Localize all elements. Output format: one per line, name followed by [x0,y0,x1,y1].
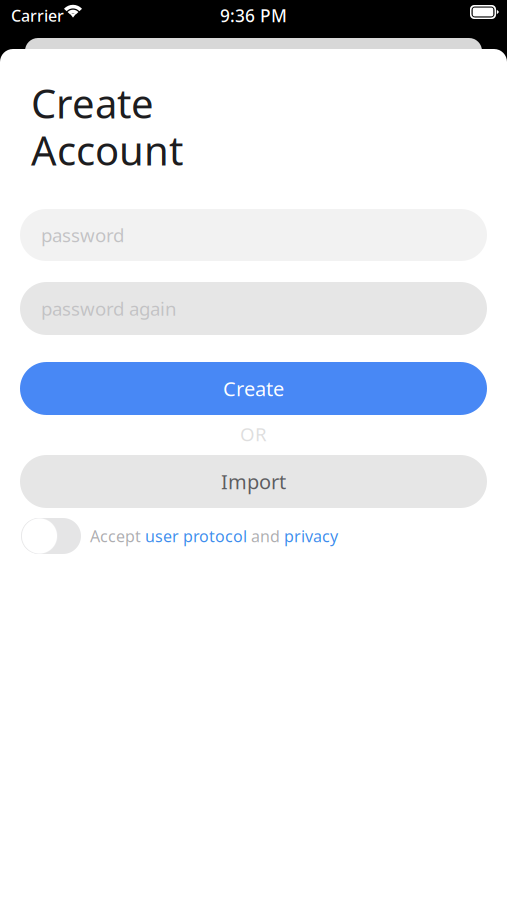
staticText: password again [41,296,177,321]
staticText: privacy [284,525,338,547]
staticText: password [41,223,124,247]
staticText: Create [223,375,284,402]
button[interactable]: Create [20,362,487,415]
staticText: user protocol [145,525,247,547]
staticText: Accept [90,525,145,547]
staticText: and [247,525,284,547]
staticText: OR [240,422,267,446]
staticText: Create [31,76,154,129]
staticText: Account [31,123,183,176]
button[interactable]: Accept terms toggle [21,518,81,554]
staticText: Import [221,468,286,495]
staticText: Carrier [11,5,64,26]
button[interactable]: Import [20,455,487,508]
staticText: 9:36 PM [220,4,287,27]
